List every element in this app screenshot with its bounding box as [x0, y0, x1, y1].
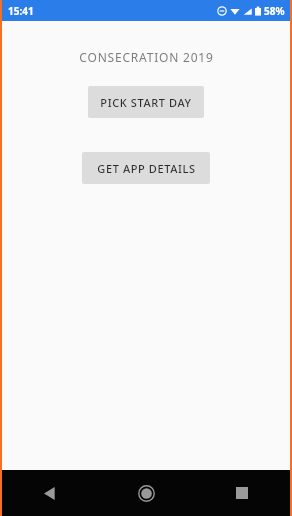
button[interactable]: Home [98, 470, 194, 516]
button[interactable]: Recent apps [194, 470, 290, 516]
staticText: PICK START DAY [100, 95, 192, 110]
staticText: 58% [264, 4, 285, 18]
button[interactable]: PICK START DAY [88, 86, 204, 118]
staticText: 15:41 [8, 4, 34, 18]
button[interactable]: Back [2, 470, 98, 516]
staticText: GET APP DETAILS [97, 161, 196, 176]
button[interactable]: GET APP DETAILS [82, 152, 210, 184]
staticText: CONSECRATION 2019 [79, 49, 214, 65]
